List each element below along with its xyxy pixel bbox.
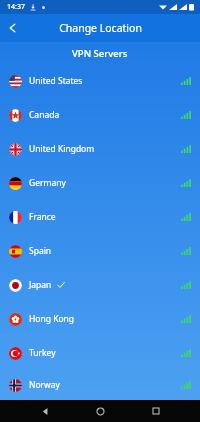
button[interactable]: Recent apps xyxy=(145,400,167,422)
staticText: Germany xyxy=(29,177,66,189)
staticText: United States xyxy=(29,75,83,87)
button[interactable]: Hong Kong xyxy=(0,302,200,336)
staticText: 14:37 xyxy=(7,2,25,12)
button[interactable]: Canada xyxy=(0,98,200,132)
staticText: VPN Servers xyxy=(72,47,128,60)
staticText: Turkey xyxy=(29,347,56,359)
staticText: Hong Kong xyxy=(29,313,75,325)
button[interactable]: Back xyxy=(34,400,56,422)
staticText: Spain xyxy=(29,245,52,257)
staticText: Canada xyxy=(29,109,60,121)
button[interactable]: Back xyxy=(0,15,26,41)
button[interactable]: Turkey xyxy=(0,336,200,370)
staticText: Japan xyxy=(29,279,52,291)
button[interactable]: Spain xyxy=(0,234,200,268)
staticText: United Kingdom xyxy=(29,143,95,155)
button[interactable]: Japan xyxy=(0,268,200,302)
button[interactable]: France xyxy=(0,200,200,234)
button[interactable]: United Kingdom xyxy=(0,132,200,166)
staticText: France xyxy=(29,211,56,223)
staticText: Change Location xyxy=(59,21,142,35)
button[interactable]: Germany xyxy=(0,166,200,200)
button[interactable]: United States xyxy=(0,64,200,98)
staticText: Norway xyxy=(29,379,60,391)
button[interactable]: Home xyxy=(89,400,111,422)
button[interactable]: Norway xyxy=(0,370,200,400)
